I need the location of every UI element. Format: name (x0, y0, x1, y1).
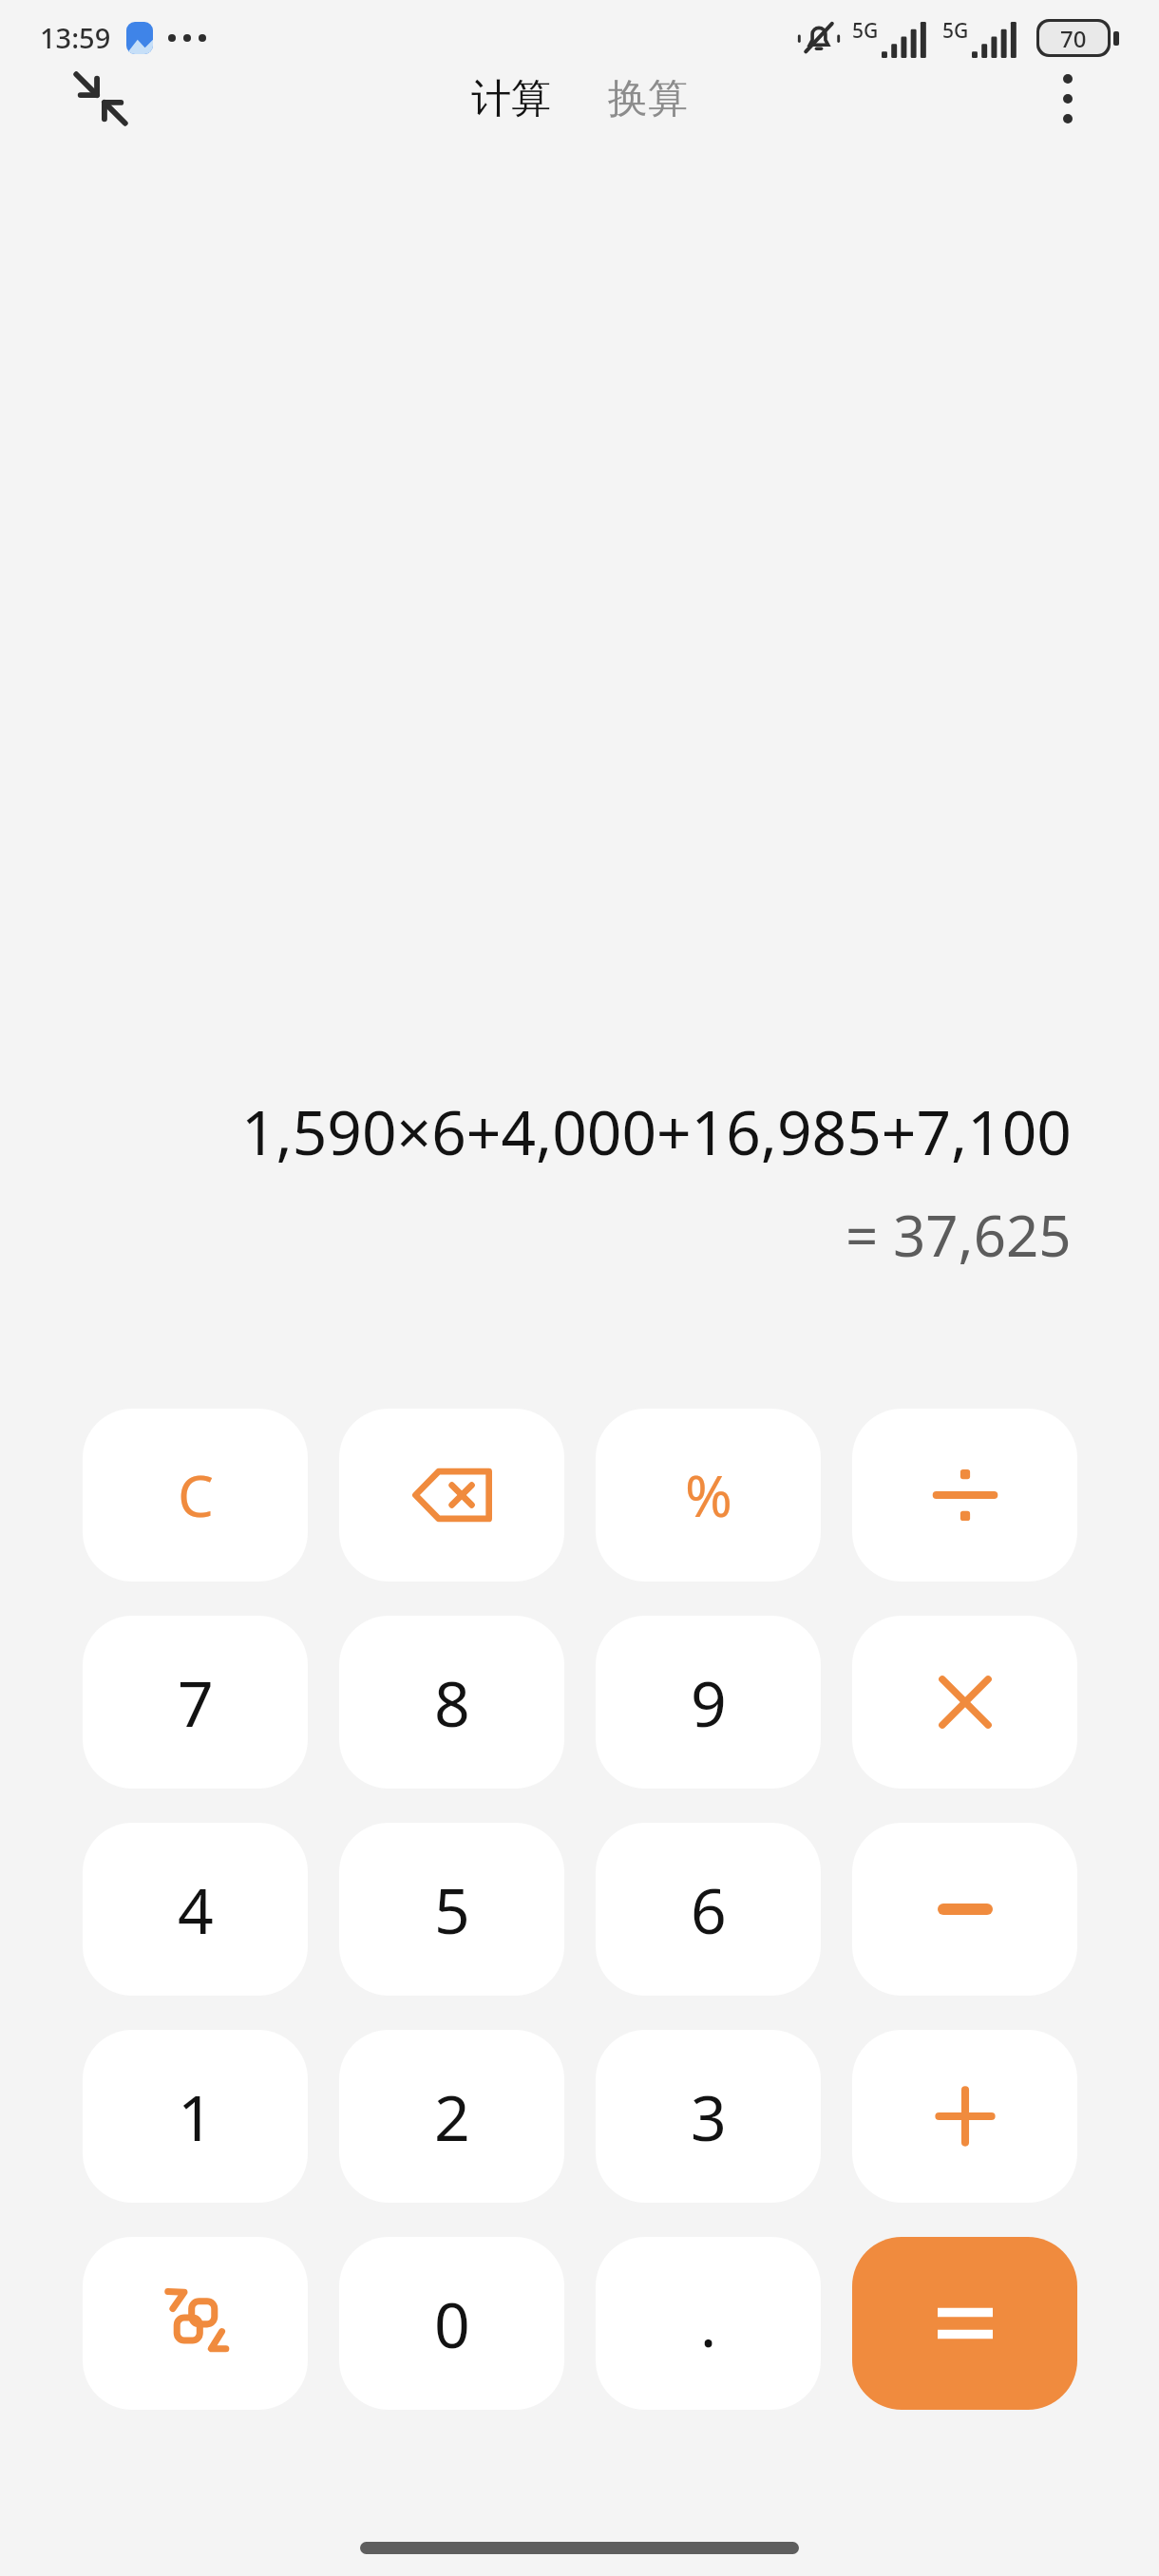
button[interactable]: 9 (596, 1616, 821, 1789)
button[interactable]: 计算 (460, 65, 562, 134)
staticText: C (178, 1456, 214, 1534)
button[interactable]: Multiply (852, 1616, 1077, 1789)
button[interactable]: 3 (596, 2030, 821, 2203)
button[interactable]: 8 (339, 1616, 564, 1789)
button[interactable]: 7 (83, 1616, 308, 1789)
button[interactable]: 4 (83, 1823, 308, 1996)
button[interactable]: 2 (339, 2030, 564, 2203)
button[interactable]: . (596, 2237, 821, 2410)
button[interactable]: Divide (852, 1409, 1077, 1582)
staticText: 5 (434, 1866, 470, 1952)
staticText: 5G (942, 17, 969, 45)
staticText: 2 (434, 2074, 470, 2159)
staticText: 3 (691, 2074, 727, 2159)
button[interactable]: % (596, 1409, 821, 1582)
staticText: 8 (434, 1659, 470, 1745)
staticText: . (700, 2282, 717, 2365)
staticText: 换算 (608, 74, 688, 124)
button[interactable]: 换算 (597, 65, 699, 134)
button[interactable]: Scientific functions (83, 2237, 308, 2410)
staticText: 1 (178, 2074, 214, 2159)
button[interactable]: 5 (339, 1823, 564, 1996)
button[interactable]: 1 (83, 2030, 308, 2203)
staticText: % (685, 1456, 732, 1534)
button[interactable]: Subtract (852, 1823, 1077, 1996)
staticText: 5G (852, 17, 879, 45)
staticText: 6 (691, 1866, 727, 1952)
button[interactable]: C (83, 1409, 308, 1582)
staticText: 70 (1060, 23, 1087, 54)
staticText: 9 (691, 1659, 727, 1745)
staticText: 13:59 (40, 19, 111, 56)
staticText: 1,590×6+4,000+16,985+7,100 (241, 1090, 1072, 1173)
staticText: 4 (178, 1866, 214, 1952)
button[interactable]: 6 (596, 1823, 821, 1996)
staticText: = 37,625 (845, 1196, 1072, 1274)
staticText: 7 (178, 1659, 214, 1745)
staticText: 0 (434, 2281, 470, 2366)
button[interactable]: Collapse (55, 53, 146, 144)
button[interactable]: More options (1024, 55, 1111, 142)
button[interactable]: Backspace (339, 1409, 564, 1582)
button[interactable]: Equals (852, 2237, 1077, 2410)
button[interactable]: Add (852, 2030, 1077, 2203)
staticText: 计算 (471, 74, 551, 124)
button[interactable]: 0 (339, 2237, 564, 2410)
